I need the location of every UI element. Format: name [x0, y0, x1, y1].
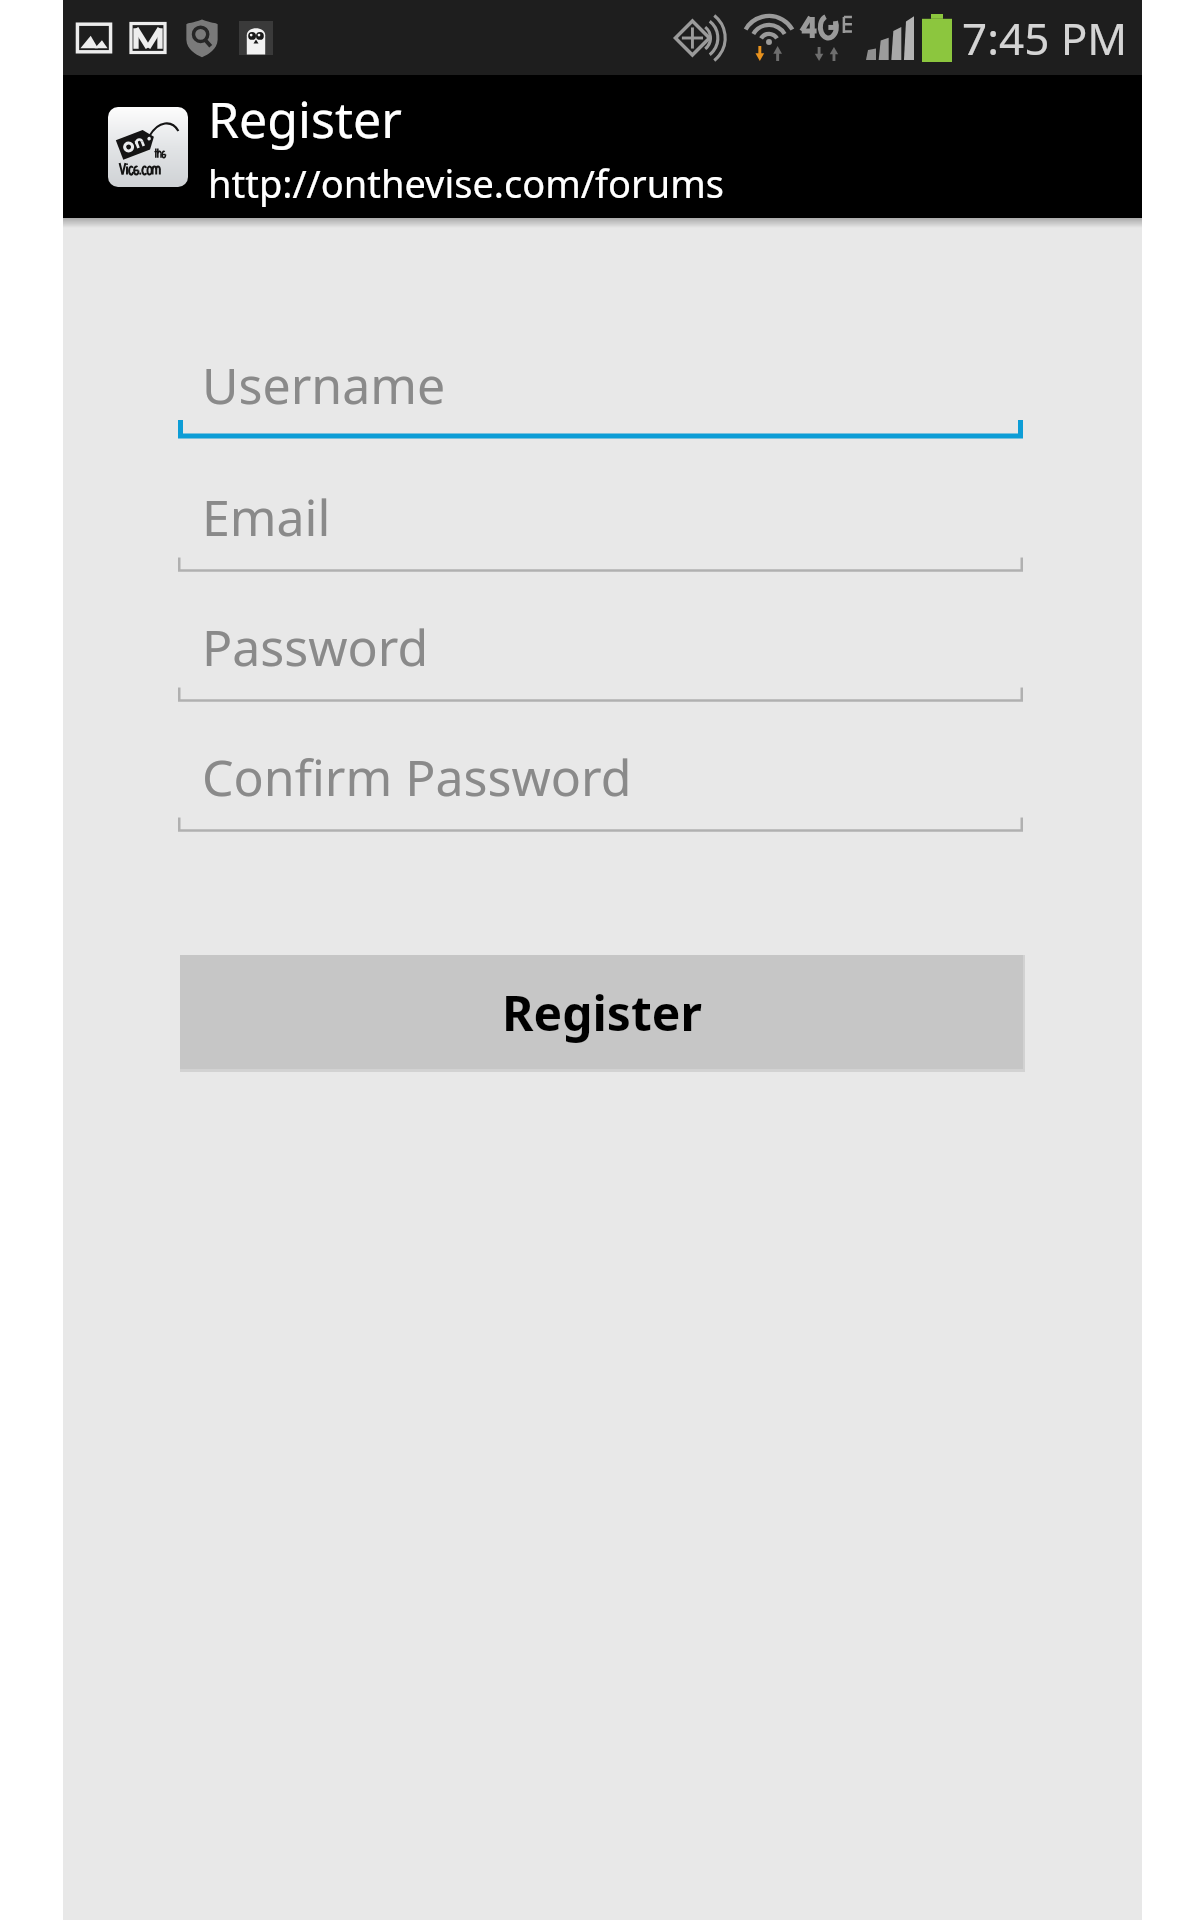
staticText: Confirm Password — [202, 743, 632, 811]
staticText: Register — [208, 85, 402, 153]
staticText: Register — [502, 980, 702, 1045]
staticText: http://onthevise.com/forums — [208, 157, 724, 209]
button[interactable]: Register — [180, 955, 1023, 1069]
button[interactable]: Username — [178, 349, 1023, 441]
button[interactable]: Email — [178, 481, 1023, 573]
staticText: Password — [202, 613, 429, 681]
staticText: 7:45 PM — [962, 8, 1128, 68]
button[interactable]: Password — [178, 611, 1023, 703]
staticText: Email — [202, 483, 331, 551]
button[interactable]: Confirm Password — [178, 741, 1023, 833]
button[interactable]: Register — [108, 85, 724, 209]
staticText: Username — [202, 351, 446, 419]
